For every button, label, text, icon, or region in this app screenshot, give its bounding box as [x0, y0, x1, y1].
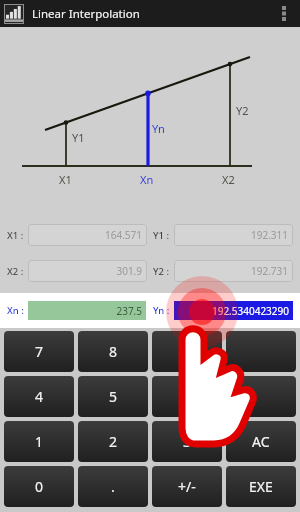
button[interactable]: 0	[4, 466, 74, 507]
staticText: 6	[183, 387, 192, 406]
staticText: 7	[35, 342, 44, 361]
button[interactable]: 192.311	[174, 224, 293, 246]
staticText: X1 :	[7, 229, 24, 242]
button[interactable]: 5	[78, 376, 148, 417]
staticText: 192.5340423290	[211, 304, 289, 318]
staticText: EXE	[249, 477, 273, 496]
staticText: 192.311	[251, 228, 288, 242]
button[interactable]: .	[78, 466, 148, 507]
staticText: X1	[59, 172, 72, 187]
staticText: Xn	[140, 172, 154, 187]
staticText: 3	[183, 432, 192, 451]
button[interactable]: 1	[4, 421, 74, 462]
staticText: Y1	[72, 130, 85, 145]
staticText: 192.731	[251, 264, 288, 278]
button[interactable]: 301.9	[28, 260, 147, 282]
staticText: 237.5	[116, 304, 142, 318]
button[interactable]: 6	[152, 376, 222, 417]
staticText: 0	[35, 477, 44, 496]
staticText: 1	[35, 432, 44, 451]
staticText: Xn :	[7, 304, 24, 317]
button[interactable]: AC	[226, 421, 296, 462]
button[interactable]: 4	[4, 376, 74, 417]
staticText: X2	[222, 172, 235, 187]
staticText: 5	[109, 387, 118, 406]
button[interactable]: Key	[226, 331, 296, 372]
button[interactable]: Key	[226, 376, 296, 417]
staticText: 8	[109, 342, 118, 361]
button[interactable]: 3	[152, 421, 222, 462]
staticText: Y2	[236, 103, 249, 118]
staticText: Linear Interpolation	[32, 6, 140, 22]
button[interactable]: 192.731	[174, 260, 293, 282]
staticText: Y1 :	[153, 229, 170, 242]
staticText: 164.571	[105, 228, 142, 242]
button[interactable]: 237.5	[28, 301, 146, 320]
button[interactable]: EXE	[226, 466, 296, 507]
staticText: .	[111, 477, 115, 496]
staticText: Yn :	[153, 304, 170, 317]
staticText: 4	[35, 387, 44, 406]
button[interactable]: +/-	[152, 466, 222, 507]
button[interactable]: App icon	[5, 5, 23, 23]
button[interactable]: 7	[4, 331, 74, 372]
staticText: Y2 :	[153, 265, 170, 278]
button[interactable]: 8	[78, 331, 148, 372]
button[interactable]: 2	[78, 421, 148, 462]
staticText: 2	[109, 432, 118, 451]
button[interactable]: 9	[152, 331, 222, 372]
button[interactable]: More options	[272, 0, 296, 27]
staticText: X2 :	[7, 265, 24, 278]
staticText: Yn	[152, 121, 165, 136]
button[interactable]: 164.571	[28, 224, 147, 246]
staticText: +/-	[178, 477, 196, 496]
staticText: 301.9	[116, 264, 142, 278]
button[interactable]: 192.5340423290	[174, 301, 293, 320]
staticText: 9	[183, 342, 192, 361]
staticText: AC	[252, 432, 270, 451]
